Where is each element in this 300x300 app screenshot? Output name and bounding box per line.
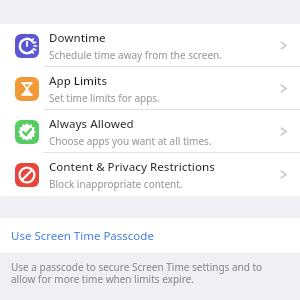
staticText: Use a passcode to secure Screen Time set…	[11, 260, 286, 286]
button[interactable]: Downtime	[0, 24, 300, 67]
staticText: Use Screen Time Passcode	[11, 228, 154, 244]
staticText: Block inappropriate content.	[49, 177, 183, 191]
staticText: App Limits	[49, 73, 108, 89]
staticText: Set time limits for apps.	[49, 91, 160, 105]
staticText: Schedule time away from the screen.	[49, 48, 222, 62]
staticText: Downtime	[49, 30, 106, 46]
button[interactable]: App Limits	[0, 67, 300, 110]
button[interactable]: Always Allowed	[0, 110, 300, 153]
staticText: Always Allowed	[49, 116, 134, 132]
staticText: Choose apps you want at all times.	[49, 134, 212, 148]
staticText: Content & Privacy Restrictions	[49, 159, 215, 175]
button[interactable]: Use Screen Time Passcode	[0, 218, 300, 253]
button[interactable]: Content & Privacy Restrictions	[0, 153, 300, 196]
